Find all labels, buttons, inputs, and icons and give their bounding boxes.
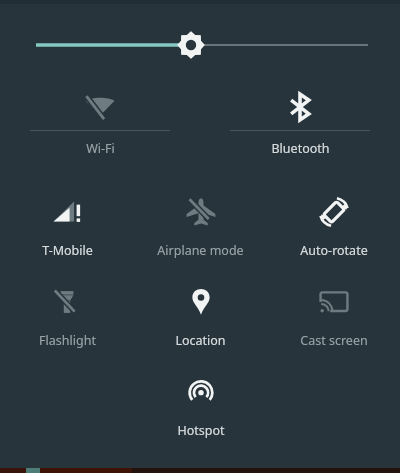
button[interactable]: T-Mobile [0,190,134,264]
staticText: Location [175,332,226,349]
staticText: Airplane mode [157,242,244,259]
button[interactable]: Location [134,280,267,354]
staticText: Flashlight [39,332,96,349]
button[interactable]: Wi-Fi [0,84,200,164]
staticText: Wi-Fi [86,140,115,157]
button[interactable]: Brightness [0,17,400,73]
button[interactable]: Flashlight [0,280,134,354]
button[interactable]: Airplane mode [134,190,267,264]
staticText: Auto-rotate [300,242,368,259]
staticText: Cast screen [300,332,368,349]
button[interactable]: Hotspot [134,370,267,444]
button[interactable]: Cast screen [267,280,400,354]
button[interactable]: Auto-rotate [267,190,400,264]
staticText: Bluetooth [271,140,330,157]
staticText: Hotspot [177,422,225,439]
button[interactable]: Bluetooth [200,84,400,164]
staticText: T-Mobile [42,242,93,259]
